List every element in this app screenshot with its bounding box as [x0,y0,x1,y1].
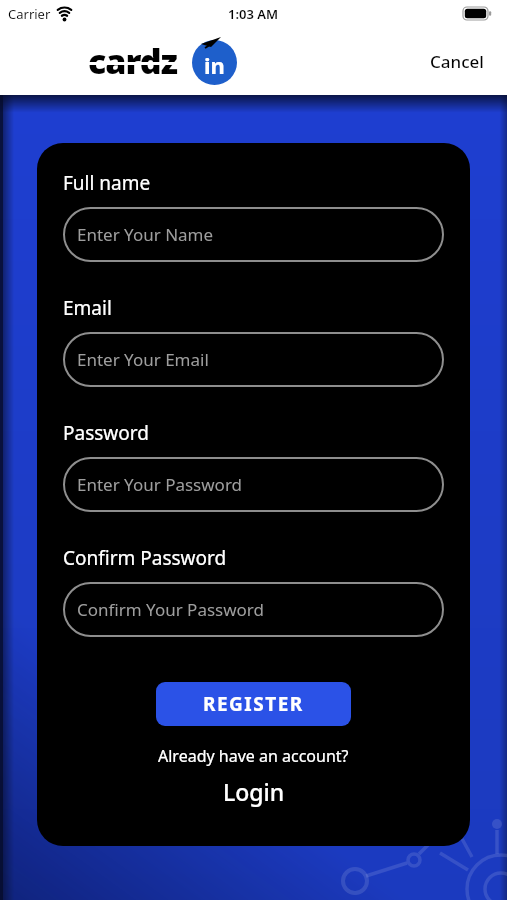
staticText: in [204,50,225,80]
staticText: Enter Your Password [77,473,243,496]
staticText: Already have an account? [158,745,349,767]
staticText: REGISTER [203,691,304,717]
staticText: Full name [63,170,151,196]
button[interactable]: Enter Your Password [63,457,444,512]
staticText: Carrier [8,5,51,23]
staticText: Confirm Password [63,545,227,571]
button[interactable]: Confirm Your Password [63,582,444,637]
staticText: cardz [88,38,177,84]
staticText: Confirm Your Password [77,598,264,621]
staticText: Email [63,295,112,321]
staticText: 1:03 AM [228,5,279,23]
button[interactable]: REGISTER [156,682,351,726]
button[interactable]: Enter Your Email [63,332,444,387]
staticText: Password [63,420,149,446]
button[interactable]: Cancel [430,50,484,73]
staticText: Enter Your Name [77,223,214,246]
button[interactable]: Enter Your Name [63,207,444,262]
staticText: Enter Your Email [77,348,209,371]
button[interactable]: Login [223,776,285,807]
